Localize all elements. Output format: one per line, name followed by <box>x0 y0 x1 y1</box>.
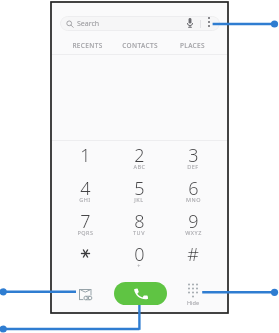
staticText: 2 <box>134 143 145 168</box>
staticText: 4 <box>80 176 91 201</box>
staticText: 1 <box>80 143 91 168</box>
button[interactable]: 3 <box>166 140 220 173</box>
button[interactable]: 1 <box>58 140 112 173</box>
staticText: DEF <box>187 163 199 170</box>
button[interactable]: 5 <box>112 173 166 206</box>
staticText: 7 <box>80 209 91 234</box>
button[interactable]: 9 <box>166 206 220 239</box>
staticText: MNO <box>186 196 201 203</box>
button[interactable]: 2 <box>112 140 166 173</box>
staticText: 5 <box>134 176 145 201</box>
button[interactable]: 8 <box>112 206 166 239</box>
button[interactable]: RECENTS <box>61 36 113 54</box>
button[interactable]: 4 <box>58 173 112 206</box>
button[interactable]: # <box>166 239 220 272</box>
button[interactable]: Search <box>60 16 220 31</box>
staticText: 6 <box>188 176 199 201</box>
button[interactable]: CONTACTS <box>113 36 166 54</box>
staticText: GHI <box>79 196 91 203</box>
staticText: RECENTS <box>72 41 103 50</box>
staticText: 3 <box>188 143 199 168</box>
button[interactable]: 7 <box>58 206 112 239</box>
staticText: Search <box>77 19 100 29</box>
button[interactable]: PLACES <box>166 36 219 54</box>
button[interactable]: Voicemail <box>75 284 97 306</box>
button[interactable]: Hide <box>181 281 205 306</box>
button[interactable]: 6 <box>166 173 220 206</box>
staticText: CONTACTS <box>122 41 158 50</box>
staticText: PQRS <box>77 229 94 236</box>
staticText: 8 <box>134 209 145 234</box>
staticText: Hide <box>187 299 199 306</box>
button[interactable]: Call <box>114 282 167 305</box>
button[interactable]: More options <box>203 16 215 28</box>
staticText: WXYZ <box>185 229 202 236</box>
staticText: JKL <box>134 196 144 203</box>
button[interactable] <box>58 239 112 272</box>
staticText: 9 <box>188 209 199 234</box>
staticText: PLACES <box>180 41 205 50</box>
staticText: # <box>187 242 199 267</box>
button[interactable]: 0 <box>112 239 166 272</box>
button[interactable]: Voice search <box>183 16 197 30</box>
staticText: ABC <box>133 163 146 170</box>
staticText: + <box>137 262 141 269</box>
staticText: TUV <box>133 229 145 236</box>
staticText: 0 <box>134 242 145 267</box>
